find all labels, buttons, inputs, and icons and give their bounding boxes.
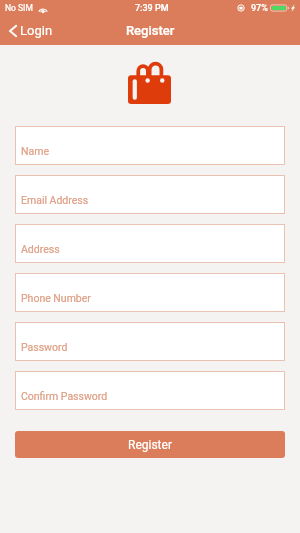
other: Battery 97 percent bbox=[270, 4, 290, 12]
staticText: Register bbox=[126, 23, 175, 38]
staticText: Register bbox=[128, 438, 172, 452]
staticText: Login bbox=[20, 23, 53, 38]
button[interactable]: Register bbox=[15, 431, 285, 458]
staticText: 7:39 PM bbox=[135, 3, 169, 14]
staticText: No SIM bbox=[5, 3, 33, 13]
other: Alarm bbox=[237, 4, 245, 12]
other: Shopping bag logo bbox=[128, 62, 171, 104]
staticText: Name bbox=[21, 145, 49, 157]
button[interactable]: Back bbox=[0, 20, 59, 41]
staticText: Phone Number bbox=[21, 292, 91, 304]
staticText: Confirm Password bbox=[21, 390, 108, 402]
button[interactable]: Password bbox=[15, 322, 285, 361]
other: Back bbox=[9, 25, 17, 37]
other: Charging bbox=[291, 4, 295, 12]
button[interactable]: Email Address bbox=[15, 175, 285, 214]
staticText: Password bbox=[21, 341, 68, 353]
staticText: Address bbox=[21, 243, 60, 255]
button[interactable]: Phone Number bbox=[15, 273, 285, 312]
staticText: 97% bbox=[251, 3, 268, 14]
button[interactable]: Address bbox=[15, 224, 285, 263]
other: Wi-Fi bbox=[38, 5, 48, 14]
staticText: Email Address bbox=[21, 194, 89, 206]
button[interactable]: Name bbox=[15, 126, 285, 165]
button[interactable]: Confirm Password bbox=[15, 371, 285, 410]
